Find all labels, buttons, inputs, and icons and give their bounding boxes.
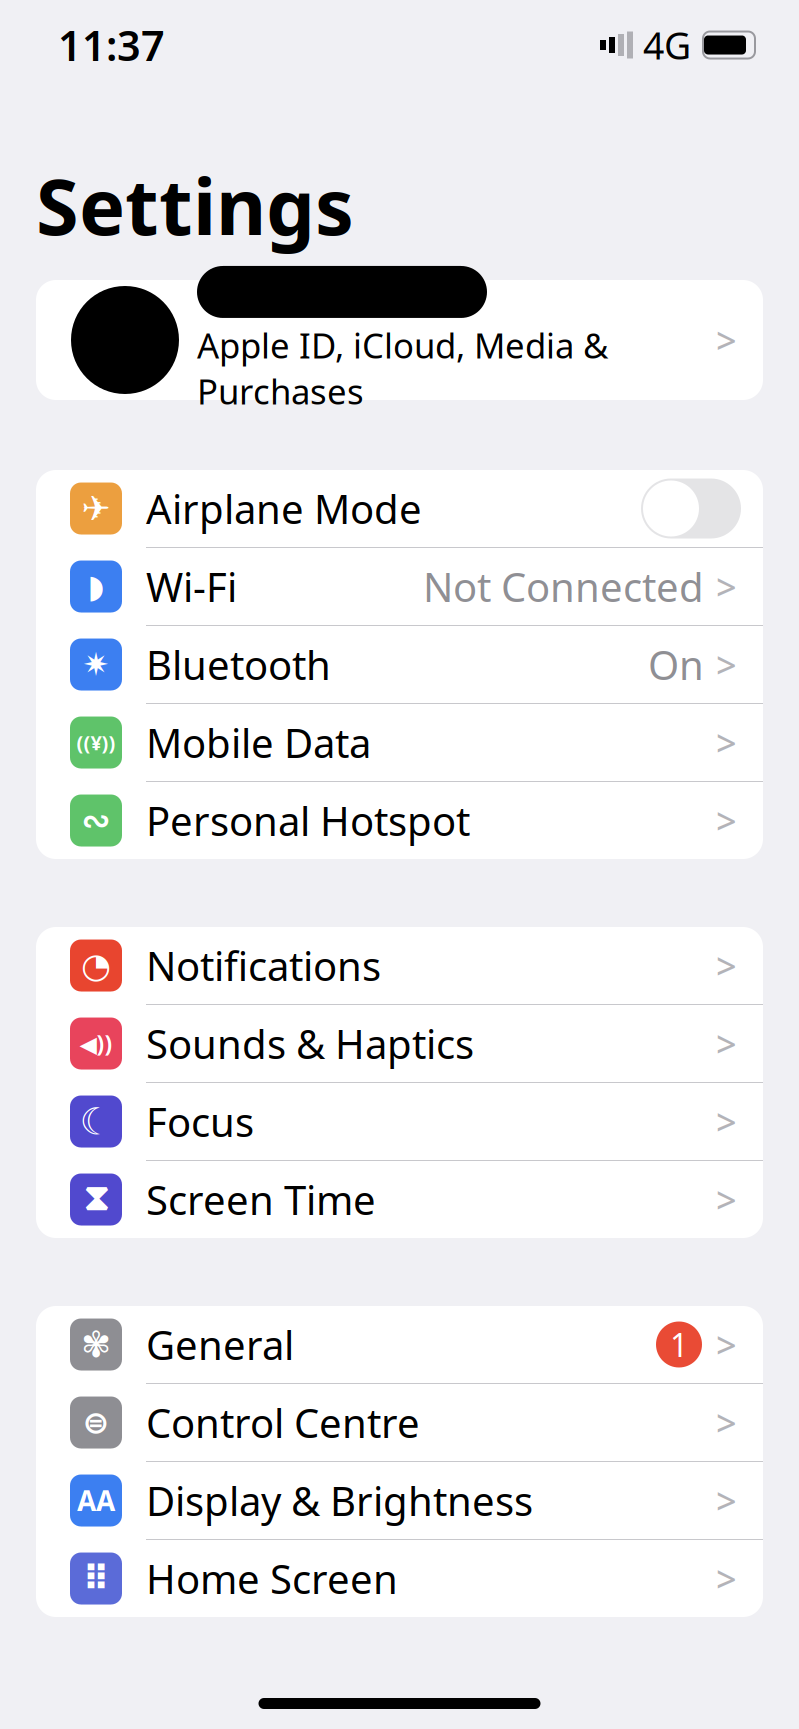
button[interactable]: ✈ [36, 470, 763, 547]
staticText: ◀)) [79, 1028, 112, 1058]
staticText: > [716, 1399, 737, 1446]
staticText: Personal Hotspot [146, 794, 470, 847]
staticText: 4G [643, 20, 691, 70]
staticText: Screen Time [146, 1173, 376, 1226]
staticText: Apple ID, iCloud, Media & Purchases [197, 322, 608, 414]
staticText: General [146, 1318, 294, 1371]
staticText: 1 [670, 1323, 688, 1366]
staticText: > [716, 1176, 737, 1223]
staticText: ((¥)) [76, 729, 115, 756]
button[interactable]: ◔ [36, 927, 763, 1004]
staticText: Focus [146, 1095, 254, 1148]
button[interactable]: ⧗ [36, 1161, 763, 1238]
staticText: Airplane Mode [146, 482, 422, 535]
staticText: ☾ [79, 1100, 112, 1143]
staticText: > [716, 316, 737, 364]
button[interactable]: Apple ID, iCloud, Media & Purchases [36, 280, 763, 400]
button[interactable]: ✷ [36, 626, 763, 703]
staticText: ⧗ [83, 1182, 108, 1217]
button[interactable]: ⠿ [36, 1540, 763, 1617]
staticText: > [716, 1477, 737, 1524]
staticText: ⊜ [82, 1404, 109, 1441]
staticText: Sounds & Haptics [146, 1017, 474, 1070]
staticText: AA [77, 1482, 115, 1519]
staticText: Bluetooth [146, 638, 331, 691]
staticText: ∾ [81, 801, 110, 840]
staticText: > [716, 797, 737, 844]
staticText: > [716, 641, 737, 688]
staticText: On [648, 638, 704, 691]
staticText: ⠿ [82, 1559, 109, 1598]
staticText: > [716, 942, 737, 989]
button[interactable]: ◗ [36, 548, 763, 625]
staticText: ◔ [81, 946, 111, 985]
staticText: Notifications [146, 939, 381, 992]
button[interactable]: ✾ [36, 1306, 763, 1383]
staticText: Home Screen [146, 1552, 398, 1605]
button[interactable]: ☾ [36, 1083, 763, 1160]
button[interactable]: ⊜ [36, 1384, 763, 1461]
staticText: Control Centre [146, 1396, 420, 1449]
button[interactable]: ◀)) [36, 1005, 763, 1082]
button[interactable]: ∾ [36, 782, 763, 859]
staticText: > [716, 1020, 737, 1067]
staticText: > [716, 1321, 737, 1368]
staticText: Mobile Data [146, 716, 371, 769]
staticText: ✷ [82, 646, 109, 683]
staticText: > [716, 719, 737, 766]
staticText: Settings [36, 154, 354, 256]
staticText: ◗ [87, 568, 104, 605]
staticText: ✾ [81, 1324, 111, 1365]
staticText: Not Connected [423, 560, 704, 613]
staticText: 11:37 [58, 18, 165, 72]
staticText: Wi-Fi [146, 560, 237, 613]
staticText: Display & Brightness [146, 1474, 533, 1527]
button[interactable]: AA [36, 1462, 763, 1539]
staticText: > [716, 1555, 737, 1602]
staticText: > [716, 1098, 737, 1145]
staticText: ✈ [81, 489, 110, 528]
staticText: > [716, 563, 737, 610]
button[interactable]: ((¥)) [36, 704, 763, 781]
